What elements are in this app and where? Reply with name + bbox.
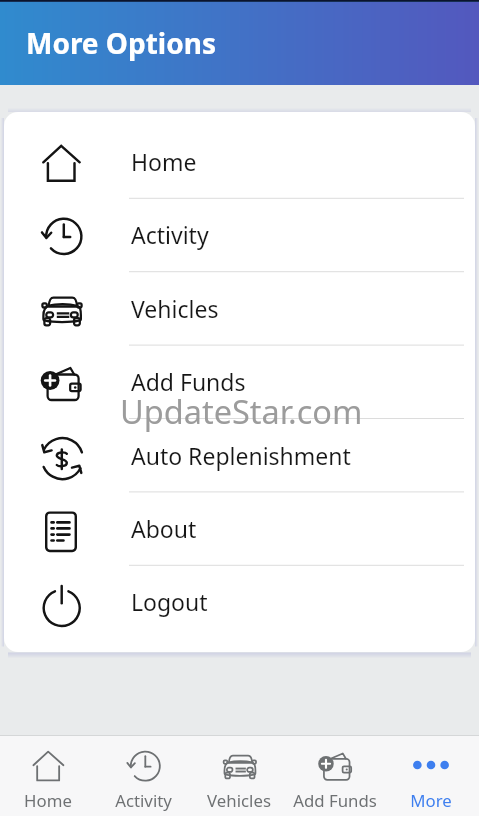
staticText: More: [410, 789, 452, 812]
button[interactable]: Home: [4, 125, 475, 198]
staticText: About: [131, 513, 197, 544]
staticText: Vehicles: [131, 293, 219, 324]
staticText: Home: [24, 789, 72, 812]
staticText: Vehicles: [207, 789, 271, 812]
staticText: UpdateStar.com: [120, 389, 363, 433]
staticText: Activity: [115, 789, 172, 812]
button[interactable]: Activity: [4, 198, 475, 271]
staticText: More Options: [26, 24, 216, 62]
button[interactable]: Activity: [95, 736, 191, 816]
button[interactable]: Add Funds: [287, 736, 383, 816]
button[interactable]: More: [383, 736, 479, 816]
staticText: Auto Replenishment: [131, 440, 351, 471]
button[interactable]: About: [4, 492, 475, 565]
button[interactable]: Add Funds: [4, 345, 475, 418]
staticText: Activity: [131, 219, 209, 250]
staticText: Logout: [131, 586, 208, 617]
button[interactable]: Vehicles: [4, 272, 475, 345]
button[interactable]: Logout: [4, 565, 475, 638]
button[interactable]: Vehicles: [191, 736, 287, 816]
button[interactable]: Auto Replenishment: [4, 419, 475, 492]
staticText: Add Funds: [131, 366, 246, 397]
staticText: Home: [131, 146, 197, 177]
staticText: Add Funds: [293, 789, 377, 812]
button[interactable]: Home: [0, 736, 95, 816]
